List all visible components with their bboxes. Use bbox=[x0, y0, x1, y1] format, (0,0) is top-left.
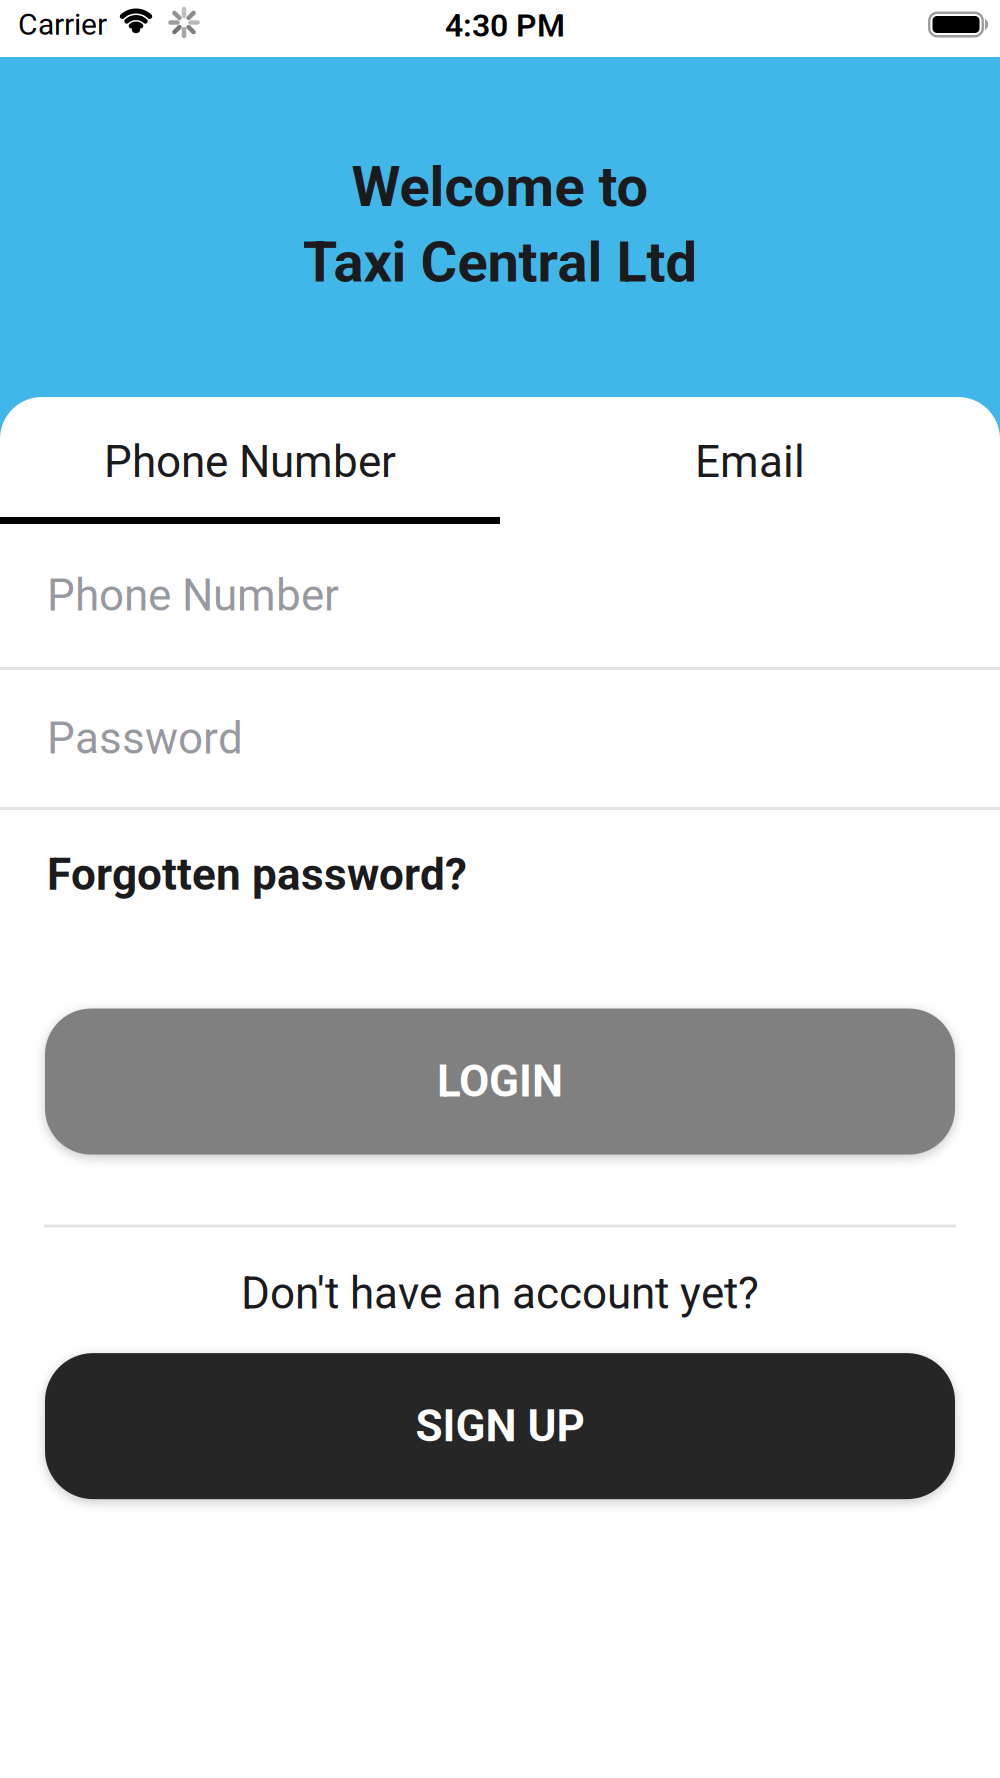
staticText: Email bbox=[695, 436, 805, 488]
staticText: Forgotten password? bbox=[47, 849, 467, 901]
staticText: Don't have an account yet? bbox=[241, 1268, 759, 1319]
button[interactable]: Forgotten password? bbox=[0, 849, 1000, 901]
staticText: Password bbox=[47, 713, 243, 764]
button[interactable]: Password bbox=[0, 670, 1000, 807]
staticText: Phone Number bbox=[47, 570, 339, 621]
button[interactable]: Phone Number bbox=[0, 397, 500, 524]
button[interactable]: SIGN UP bbox=[45, 1353, 955, 1499]
button[interactable]: Phone Number bbox=[0, 524, 1000, 667]
staticText: 4:30 PM bbox=[445, 7, 565, 44]
staticText: SIGN UP bbox=[415, 1400, 584, 1452]
staticText: Carrier bbox=[18, 7, 107, 42]
staticText: LOGIN bbox=[437, 1056, 563, 1107]
staticText: Welcome to bbox=[351, 154, 648, 220]
staticText: Taxi Central Ltd bbox=[302, 230, 697, 295]
staticText: Phone Number bbox=[104, 436, 396, 488]
button[interactable]: Email bbox=[500, 397, 1000, 524]
button[interactable]: LOGIN bbox=[45, 1009, 955, 1155]
